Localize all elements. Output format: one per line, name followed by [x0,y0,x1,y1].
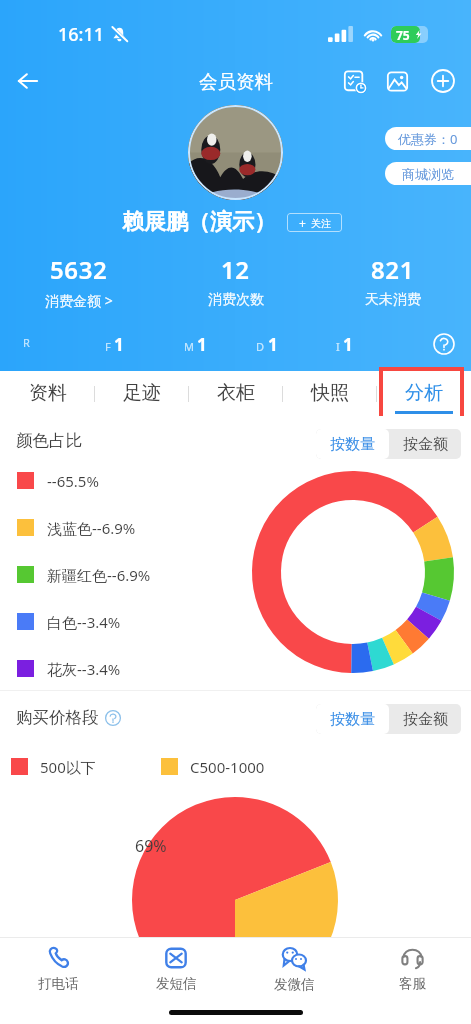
button[interactable]: 商城浏览 [385,162,471,185]
button[interactable]: 资料 [0,371,95,416]
staticText: 75 [396,27,410,43]
button[interactable]: 按数量 [316,429,389,459]
button[interactable]: 发短信 [117,938,235,1000]
button[interactable]: 说明 [104,709,122,727]
staticText: 购买价格段 [16,707,99,728]
button[interactable]: 快照 [283,371,377,416]
staticText: 发微信 [274,976,315,993]
staticText: 赖展鹏（演示） [122,208,276,236]
button[interactable]: 按金额 [389,704,461,734]
staticText: 资料 [29,381,67,405]
staticText: 快照 [311,381,349,405]
staticText: C500-1000 [190,757,265,777]
staticText: 客服 [399,975,426,992]
button[interactable]: 帮助 [430,330,458,358]
staticText: 会员资料 [199,70,273,93]
staticText: 按数量 [330,435,375,454]
staticText: D [256,339,265,354]
button[interactable]: 按数量 [316,704,389,734]
staticText: I [336,339,340,354]
staticText: 1 [197,333,207,356]
staticText: 1 [343,333,353,356]
staticText: F [105,339,111,354]
staticText: 按数量 [330,710,375,729]
button[interactable]: 衣柜 [189,371,283,416]
button[interactable]: 相册 [376,60,418,102]
button[interactable]: 返回 [7,60,49,102]
staticText: 16:11 [58,22,105,47]
staticText: 衣柜 [217,381,255,405]
staticText: 商城浏览 [402,166,454,182]
staticText: M [184,339,194,354]
button[interactable]: 优惠券：0 [385,127,471,150]
staticText: 新疆红色--6.9% [47,565,151,585]
staticText: 500以下 [40,757,96,777]
staticText: 1 [268,333,278,356]
staticText: 足迹 [123,381,161,405]
button[interactable]: 分析 [377,371,471,416]
staticText: R [23,335,30,350]
staticText: 白色--3.4% [47,612,121,632]
staticText: 颜色占比 [16,430,82,451]
staticText: 关注 [311,217,331,230]
button[interactable]: 按金额 [389,429,461,459]
staticText: 12 [221,253,250,286]
staticText: 花灰--3.4% [47,659,121,679]
staticText: 分析 [405,381,443,405]
staticText: 浅蓝色--6.9% [47,518,136,538]
staticText: --65.5% [47,471,99,491]
button[interactable]: 发微信 [235,938,353,1000]
button[interactable]: 足迹 [95,371,189,416]
staticText: 消费金额 > [45,291,113,310]
staticText: 天未消费 [365,291,421,309]
staticText: 发短信 [156,975,197,992]
staticText: 打电话 [38,975,79,992]
staticText: 5632 [50,253,108,286]
staticText: 按金额 [403,710,448,729]
staticText: 消费次数 [208,291,264,309]
staticText: 69% [135,835,167,857]
button[interactable]: 打电话 [0,938,117,1000]
staticText: 821 [371,253,414,286]
button[interactable]: + [287,213,342,232]
staticText: + [299,215,306,231]
button[interactable]: 添加 [422,60,464,102]
staticText: 1 [114,333,124,356]
button[interactable]: 客服 [353,938,471,1000]
button[interactable]: 任务 [333,60,375,102]
staticText: 按金额 [403,435,448,454]
staticText: 优惠券：0 [398,130,458,148]
